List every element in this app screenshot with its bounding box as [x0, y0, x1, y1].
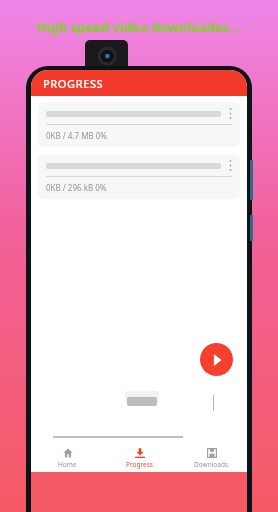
staticText: PROGRESS [43, 76, 104, 91]
button[interactable]: Home [31, 444, 103, 472]
staticText: Progress [126, 460, 153, 469]
button[interactable]: Downloads [175, 444, 247, 472]
button[interactable]: Progress [103, 444, 175, 472]
staticText: 0KB / 296 kB 0% [46, 182, 107, 193]
button[interactable]: 0KB / 296 kB 0% [38, 154, 240, 199]
staticText: High speed video downloader.... [0, 18, 278, 36]
staticText: Home [58, 460, 77, 469]
button[interactable]: 0KB / 4.7 MB 0% [38, 102, 240, 147]
staticText: 0KB / 4.7 MB 0% [46, 130, 107, 141]
staticText: Downloads [194, 460, 229, 469]
button[interactable]: Play [200, 343, 233, 376]
